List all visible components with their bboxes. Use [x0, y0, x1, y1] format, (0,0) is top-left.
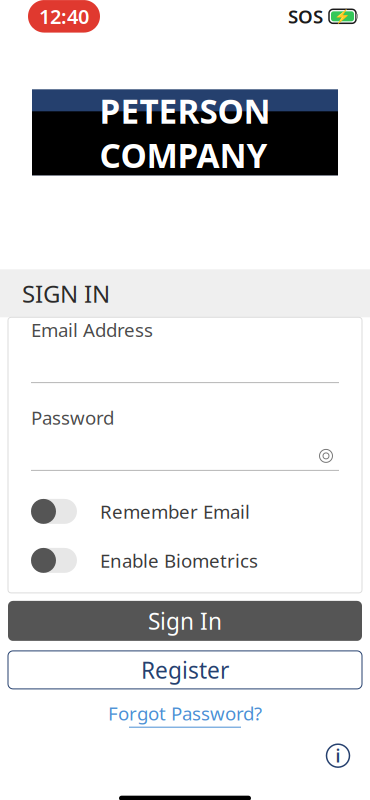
- button[interactable]: Sign In: [0, 601, 370, 641]
- staticText: Remember Email: [100, 499, 250, 524]
- staticText: SIGN IN: [22, 277, 110, 309]
- button[interactable]: Register: [0, 651, 370, 689]
- staticText: Password: [31, 405, 114, 430]
- staticText: Email Address: [31, 317, 153, 342]
- staticText: Forgot Password?: [108, 701, 262, 726]
- button[interactable]: Enable Biometrics: [31, 548, 339, 573]
- staticText: ⚡: [334, 9, 351, 24]
- staticText: i: [335, 744, 340, 767]
- button[interactable]: Forgot Password?: [0, 701, 370, 728]
- staticText: Register: [141, 655, 229, 685]
- button[interactable]: Information: [318, 736, 358, 776]
- staticText: 12:40: [39, 3, 89, 30]
- staticText: Sign In: [148, 606, 222, 636]
- staticText: PETERSON COMPANY: [99, 89, 270, 177]
- staticText: SOS: [288, 4, 323, 29]
- button[interactable]: Remember Email: [31, 499, 339, 524]
- button[interactable]: Show password: [313, 446, 339, 466]
- staticText: Enable Biometrics: [100, 548, 258, 573]
